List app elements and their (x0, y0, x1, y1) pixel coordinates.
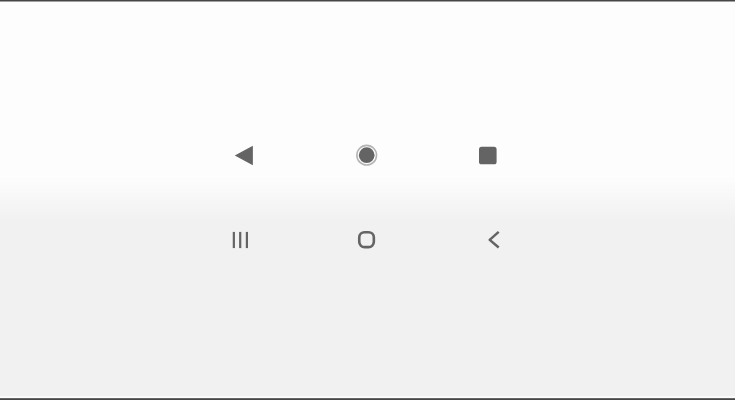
button[interactable]: Back (214, 125, 274, 185)
button[interactable]: Home (337, 125, 397, 185)
button[interactable]: Recent apps (210, 210, 270, 270)
button[interactable]: Recent apps (458, 125, 518, 185)
button[interactable]: Home (337, 210, 397, 270)
button[interactable]: Back (459, 210, 519, 270)
